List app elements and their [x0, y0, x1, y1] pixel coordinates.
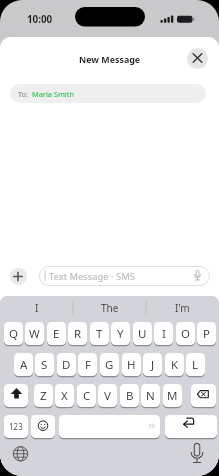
button[interactable]: P	[197, 322, 216, 345]
staticText: A	[20, 357, 28, 373]
button[interactable]: X	[55, 384, 74, 407]
button[interactable]: C	[77, 384, 96, 407]
staticText: K	[171, 357, 179, 373]
staticText: H	[127, 357, 136, 373]
staticText: EN	[149, 423, 155, 429]
staticText: Y	[117, 326, 124, 342]
staticText: T	[96, 326, 103, 342]
button[interactable]	[165, 415, 217, 438]
button[interactable]: M	[163, 384, 182, 407]
staticText: Text Message · SMS	[49, 270, 135, 283]
button[interactable]: I	[154, 322, 173, 345]
staticText: M	[167, 388, 178, 404]
button[interactable]: J	[143, 353, 162, 376]
button[interactable]: A	[14, 353, 33, 376]
staticText: The	[101, 301, 119, 315]
staticText: I	[162, 326, 166, 342]
button[interactable]: G	[100, 353, 119, 376]
button[interactable]: V	[98, 384, 117, 407]
button[interactable]: U	[133, 322, 152, 345]
button[interactable]	[10, 268, 27, 285]
button[interactable]: H	[122, 353, 141, 376]
staticText: P	[203, 326, 210, 342]
staticText: R	[74, 326, 82, 342]
button[interactable]: E	[47, 322, 66, 345]
button[interactable]: S	[35, 353, 54, 376]
button[interactable]: 123	[4, 415, 28, 438]
button[interactable]: O	[176, 322, 195, 345]
staticText: F	[85, 357, 91, 373]
staticText: S	[41, 357, 48, 373]
button[interactable]: D	[57, 353, 76, 376]
staticText: New Message	[79, 53, 141, 65]
button[interactable]: N	[141, 384, 160, 407]
button[interactable]: L	[186, 353, 205, 376]
button[interactable]: The	[75, 300, 144, 316]
staticText: D	[62, 357, 71, 373]
button[interactable]: Q	[4, 322, 23, 345]
staticText: Maria Smith	[32, 89, 74, 99]
staticText: W	[29, 326, 40, 342]
button[interactable]: W	[25, 322, 44, 345]
button[interactable]	[187, 444, 207, 464]
staticText: J	[151, 357, 155, 373]
staticText: I'm	[175, 301, 190, 315]
staticText: Q	[9, 326, 18, 342]
staticText: U	[138, 326, 147, 342]
button[interactable]	[31, 415, 55, 438]
staticText: I	[35, 301, 39, 315]
button[interactable]: Z	[34, 384, 53, 407]
staticText: N	[146, 388, 155, 404]
staticText: O	[181, 326, 190, 342]
button[interactable]: B	[120, 384, 139, 407]
staticText: X	[61, 388, 68, 404]
staticText: Z	[40, 388, 47, 404]
button[interactable]: Text Message · SMS	[39, 266, 210, 286]
button[interactable]: F	[78, 353, 97, 376]
staticText: B	[126, 388, 134, 404]
staticText: E	[53, 326, 60, 342]
staticText: L	[192, 357, 199, 373]
button[interactable]	[191, 384, 216, 407]
button[interactable]	[59, 415, 160, 438]
staticText: V	[104, 388, 111, 404]
button[interactable]: I'm	[148, 300, 217, 316]
button[interactable]: T	[90, 322, 109, 345]
staticText: 123	[9, 421, 23, 432]
staticText: To:	[18, 89, 29, 99]
button[interactable]: R	[68, 322, 87, 345]
staticText: C	[83, 388, 91, 404]
staticText: 10:00	[27, 13, 53, 24]
staticText: G	[105, 357, 114, 373]
button[interactable]: K	[165, 353, 184, 376]
button[interactable]	[187, 48, 208, 69]
button[interactable]	[11, 444, 30, 463]
button[interactable]	[4, 384, 28, 407]
button[interactable]: I	[2, 300, 71, 316]
button[interactable]: To:	[10, 84, 206, 103]
button[interactable]: Y	[111, 322, 130, 345]
